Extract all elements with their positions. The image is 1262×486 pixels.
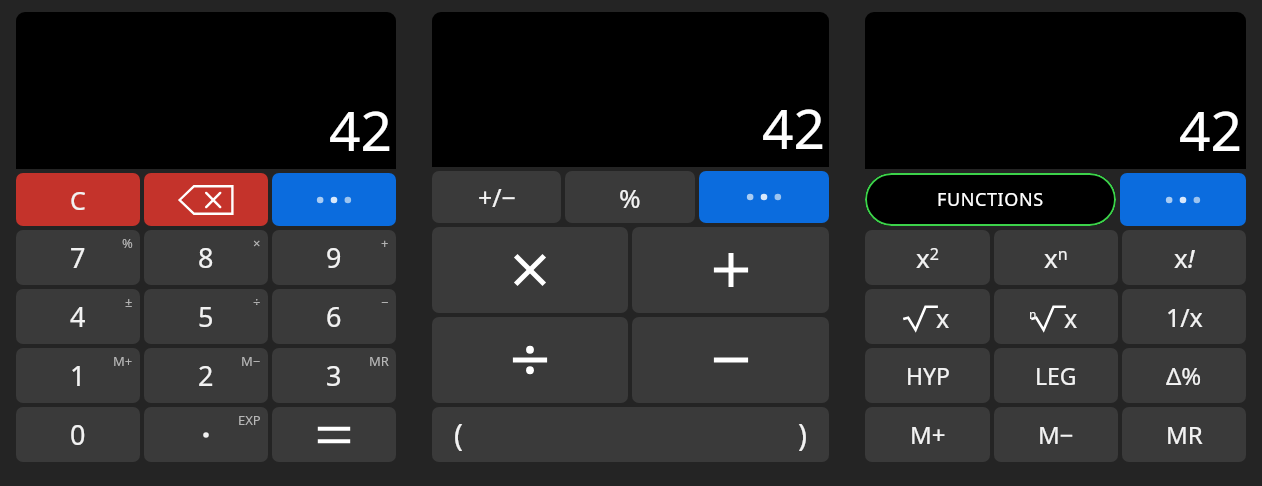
button[interactable]: 1 [16, 348, 140, 403]
staticText: MR [1166, 418, 1203, 451]
button[interactable]: HYP [865, 348, 990, 403]
staticText: 6 [326, 298, 342, 335]
button[interactable]: EXP [144, 407, 268, 462]
staticText: x [936, 301, 950, 335]
staticText: % [122, 234, 133, 252]
button[interactable]: +/− [432, 171, 561, 223]
button[interactable]: 1/x [1122, 289, 1246, 344]
button[interactable]: 7 [16, 230, 140, 285]
button[interactable]: 2 [144, 348, 268, 403]
button[interactable]: Backspace [144, 173, 268, 226]
button[interactable]: M− [994, 407, 1118, 462]
staticText: n [1029, 306, 1037, 322]
button[interactable]: Δ% [1122, 348, 1246, 403]
button[interactable]: More options [1120, 173, 1246, 226]
staticText: 9 [326, 239, 342, 276]
button[interactable]: 8 [144, 230, 268, 285]
staticText: +/− [478, 180, 516, 214]
staticText: FUNCTIONS [937, 187, 1044, 212]
button[interactable]: Add [632, 227, 829, 313]
staticText: × [253, 234, 261, 252]
staticText: M+ [910, 418, 946, 451]
button[interactable]: More options [272, 173, 396, 226]
button[interactable]: xn [994, 230, 1118, 285]
button[interactable]: x [994, 289, 1118, 344]
staticText: M− [1038, 418, 1074, 451]
staticText: 42 [1179, 92, 1242, 167]
staticText: 42 [762, 90, 825, 165]
button[interactable]: Multiply [432, 227, 628, 313]
button[interactable]: 5 [144, 289, 268, 344]
staticText: MR [369, 352, 389, 370]
button[interactable]: Subtract [632, 317, 829, 403]
staticText: x! [1174, 240, 1195, 275]
button[interactable]: 3 [272, 348, 396, 403]
button[interactable]: ( [432, 407, 829, 462]
staticText: % [619, 180, 641, 215]
staticText: ÷ [253, 293, 261, 311]
staticText: C [70, 183, 86, 217]
staticText: + [381, 234, 389, 252]
staticText: 3 [326, 357, 342, 394]
staticText: M+ [113, 352, 133, 370]
staticText: 1/x [1166, 300, 1203, 334]
button[interactable]: % [565, 171, 695, 223]
button[interactable]: 4 [16, 289, 140, 344]
staticText: ± [125, 293, 133, 311]
staticText: 0 [70, 416, 86, 453]
staticText: Δ% [1166, 359, 1202, 392]
button[interactable]: 9 [272, 230, 396, 285]
staticText: 42 [329, 92, 392, 167]
button[interactable]: FUNCTIONS [865, 173, 1116, 226]
button[interactable]: 6 [272, 289, 396, 344]
staticText: 1 [70, 357, 86, 394]
button[interactable]: x! [1122, 230, 1246, 285]
staticText: LEG [1035, 360, 1077, 391]
staticText: HYP [906, 360, 950, 391]
button[interactable]: More options [699, 171, 829, 223]
button[interactable]: Divide [432, 317, 628, 403]
staticText: 4 [70, 298, 86, 335]
staticText: x2 [916, 240, 939, 275]
staticText: EXP [238, 411, 261, 429]
staticText: ( [454, 414, 463, 455]
staticText: 7 [70, 239, 86, 276]
staticText: − [381, 293, 389, 311]
staticText: xn [1044, 240, 1068, 275]
button[interactable]: LEG [994, 348, 1118, 403]
button[interactable]: M+ [865, 407, 990, 462]
button[interactable]: x2 [865, 230, 990, 285]
staticText: 5 [198, 298, 214, 335]
button[interactable]: 0 [16, 407, 140, 462]
staticText: M− [241, 352, 261, 370]
staticText: 8 [198, 239, 214, 276]
button[interactable]: x [865, 289, 990, 344]
staticText: ) [798, 414, 807, 455]
button[interactable]: C [16, 173, 140, 226]
button[interactable]: Equals [272, 407, 396, 462]
staticText: x [1064, 301, 1078, 335]
button[interactable]: MR [1122, 407, 1246, 462]
staticText: 2 [198, 357, 214, 394]
